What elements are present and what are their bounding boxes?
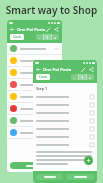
staticText: One Pot Pasta — [17, 27, 46, 33]
button[interactable]: + — [87, 74, 94, 80]
button[interactable]: Check item — [36, 93, 94, 101]
other: Back — [10, 27, 15, 32]
button[interactable]: Edit — [46, 27, 51, 32]
button[interactable] — [7, 115, 62, 126]
other: Edit — [46, 27, 51, 32]
button[interactable]: Check item — [36, 101, 94, 109]
button[interactable] — [7, 103, 62, 114]
button[interactable] — [7, 67, 62, 78]
button[interactable]: - — [71, 74, 78, 80]
button[interactable]: Check item — [36, 141, 94, 149]
button[interactable]: Back — [10, 27, 15, 32]
staticText: + — [54, 35, 57, 40]
staticText: Cook — [13, 35, 21, 39]
other: Share — [54, 27, 59, 32]
button[interactable]: Edit — [81, 67, 86, 72]
button[interactable] — [66, 174, 94, 180]
staticText: One Pot Pasta — [43, 67, 72, 73]
staticText: - — [39, 35, 41, 40]
button[interactable] — [7, 43, 62, 54]
button[interactable]: Check item — [36, 133, 94, 141]
other: Check item — [90, 95, 94, 99]
button[interactable] — [36, 174, 63, 180]
other: Back — [36, 67, 41, 72]
staticText: 1 — [81, 75, 84, 80]
button[interactable] — [7, 55, 62, 66]
staticText: Step 1 — [36, 86, 47, 91]
staticText: - — [74, 75, 76, 80]
button[interactable]: Share — [89, 67, 94, 72]
staticText: Cook — [39, 75, 47, 79]
button[interactable]: 1 — [79, 74, 86, 80]
other: Check item — [90, 119, 94, 123]
button[interactable] — [7, 91, 62, 102]
button[interactable]: Cook — [10, 34, 24, 40]
button[interactable]: - — [36, 34, 43, 40]
other: Share — [89, 67, 94, 72]
staticText: + — [89, 75, 92, 80]
staticText: Smart way to Shop — [0, 3, 103, 17]
other: Check item — [90, 111, 94, 115]
button[interactable]: Cook — [36, 74, 50, 80]
button[interactable]: Check item — [36, 125, 94, 133]
other: Check item — [90, 135, 94, 139]
button[interactable] — [7, 127, 62, 138]
button[interactable]: Add item — [84, 156, 93, 165]
staticText: 1 — [46, 35, 49, 40]
other: Check item — [90, 143, 94, 147]
button[interactable]: Check item — [36, 109, 94, 117]
button[interactable]: 1 — [44, 34, 51, 40]
button[interactable] — [7, 79, 62, 90]
button[interactable]: + — [52, 34, 59, 40]
other: Edit — [81, 67, 86, 72]
other: Check item — [90, 103, 94, 107]
button[interactable]: Back — [36, 67, 41, 72]
button[interactable]: Check item — [36, 117, 94, 125]
other: Check item — [90, 127, 94, 131]
button[interactable] — [10, 162, 59, 169]
button[interactable]: Share — [54, 27, 59, 32]
